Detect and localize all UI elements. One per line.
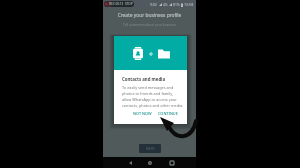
- button[interactable]: NEXT: [139, 144, 161, 153]
- staticText: NEXT: [146, 146, 155, 151]
- button[interactable]: Recents: [167, 158, 177, 168]
- staticText: Contacts and media: [122, 76, 166, 82]
- staticText: 81%: [173, 2, 180, 7]
- staticText: 13:58: [184, 2, 194, 7]
- staticText: REC 00:13 STOP: [109, 2, 133, 6]
- staticText: Tell customers about your business: [103, 23, 196, 27]
- button[interactable]: NOT NOW: [132, 109, 153, 118]
- staticText: 9:02: [150, 2, 157, 7]
- button[interactable]: Home: [145, 158, 155, 168]
- staticText: To easily send messages and photos to fr…: [122, 85, 184, 108]
- button[interactable]: CONTINUE: [157, 109, 179, 118]
- staticText: 4G: [163, 2, 168, 7]
- staticText: NOT NOW: [133, 111, 152, 116]
- button[interactable]: Back: [125, 158, 135, 168]
- staticText: Create your business profile: [103, 12, 196, 19]
- staticText: CONTINUE: [158, 111, 178, 116]
